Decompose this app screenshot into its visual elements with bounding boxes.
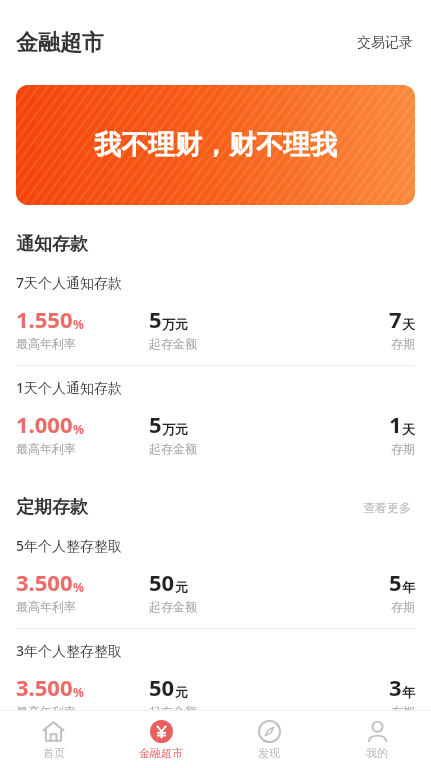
staticText: 7天个人通知存款	[16, 273, 123, 292]
staticText: 金融超市	[16, 29, 104, 57]
staticText: 天	[402, 421, 415, 437]
button[interactable]: 3年个人整存整取	[0, 629, 431, 733]
staticText: 5	[149, 409, 162, 439]
staticText: 50	[149, 672, 175, 702]
staticText: 起存金额	[149, 336, 197, 351]
staticText: 1天个人通知存款	[16, 378, 123, 397]
staticText: 我的	[366, 746, 388, 760]
staticText: 通知存款	[16, 233, 88, 256]
staticText: 5年个人整存整取	[16, 536, 123, 555]
staticText: 金融超市	[139, 746, 183, 760]
staticText: 3.500	[16, 567, 73, 597]
staticText: 存期	[391, 441, 415, 456]
staticText: 年	[402, 579, 415, 595]
staticText: 最高年利率	[16, 441, 76, 456]
staticText: 5	[389, 567, 402, 597]
button[interactable]: 金融超市	[107, 711, 215, 768]
staticText: 1.000	[16, 409, 73, 439]
button[interactable]: 我的	[323, 711, 431, 768]
staticText: 最高年利率	[16, 336, 76, 351]
button[interactable]: 7天个人通知存款	[0, 261, 431, 365]
staticText: %	[73, 421, 84, 437]
staticText: 定期存款	[16, 496, 88, 519]
staticText: 3	[389, 672, 402, 702]
staticText: 存期	[391, 336, 415, 351]
staticText: 1.550	[16, 304, 73, 334]
staticText: 7	[389, 304, 402, 334]
staticText: 起存金额	[149, 704, 197, 719]
staticText: %	[73, 684, 84, 700]
staticText: 最高年利率	[16, 704, 76, 719]
staticText: 50	[149, 567, 175, 597]
button[interactable]: 查看更多	[359, 496, 415, 519]
staticText: 3.500	[16, 672, 73, 702]
button[interactable]: 1天个人通知存款	[0, 366, 431, 470]
staticText: %	[73, 579, 84, 595]
staticText: 存期	[391, 704, 415, 719]
staticText: 查看更多	[363, 500, 411, 515]
staticText: 最高年利率	[16, 599, 76, 614]
staticText: 元	[175, 579, 188, 595]
staticText: 5	[149, 304, 162, 334]
staticText: 起存金额	[149, 441, 197, 456]
button[interactable]: 首页	[0, 711, 107, 768]
staticText: 交易记录	[357, 34, 413, 52]
staticText: 年	[402, 684, 415, 700]
staticText: %	[73, 316, 84, 332]
button[interactable]: 发现	[215, 711, 323, 768]
staticText: 存期	[391, 599, 415, 614]
staticText: 1	[389, 409, 402, 439]
staticText: 万元	[162, 316, 188, 332]
button[interactable]: 5年个人整存整取	[0, 524, 431, 628]
staticText: 天	[402, 316, 415, 332]
staticText: 我不理财，财不理我	[94, 128, 337, 162]
staticText: 万元	[162, 421, 188, 437]
staticText: 发现	[258, 746, 280, 760]
staticText: 3年个人整存整取	[16, 641, 123, 660]
button[interactable]: 交易记录	[351, 28, 419, 58]
button[interactable]: 我不理财，财不理我	[16, 85, 415, 205]
staticText: 元	[175, 684, 188, 700]
staticText: 首页	[43, 746, 65, 760]
staticText: 起存金额	[149, 599, 197, 614]
